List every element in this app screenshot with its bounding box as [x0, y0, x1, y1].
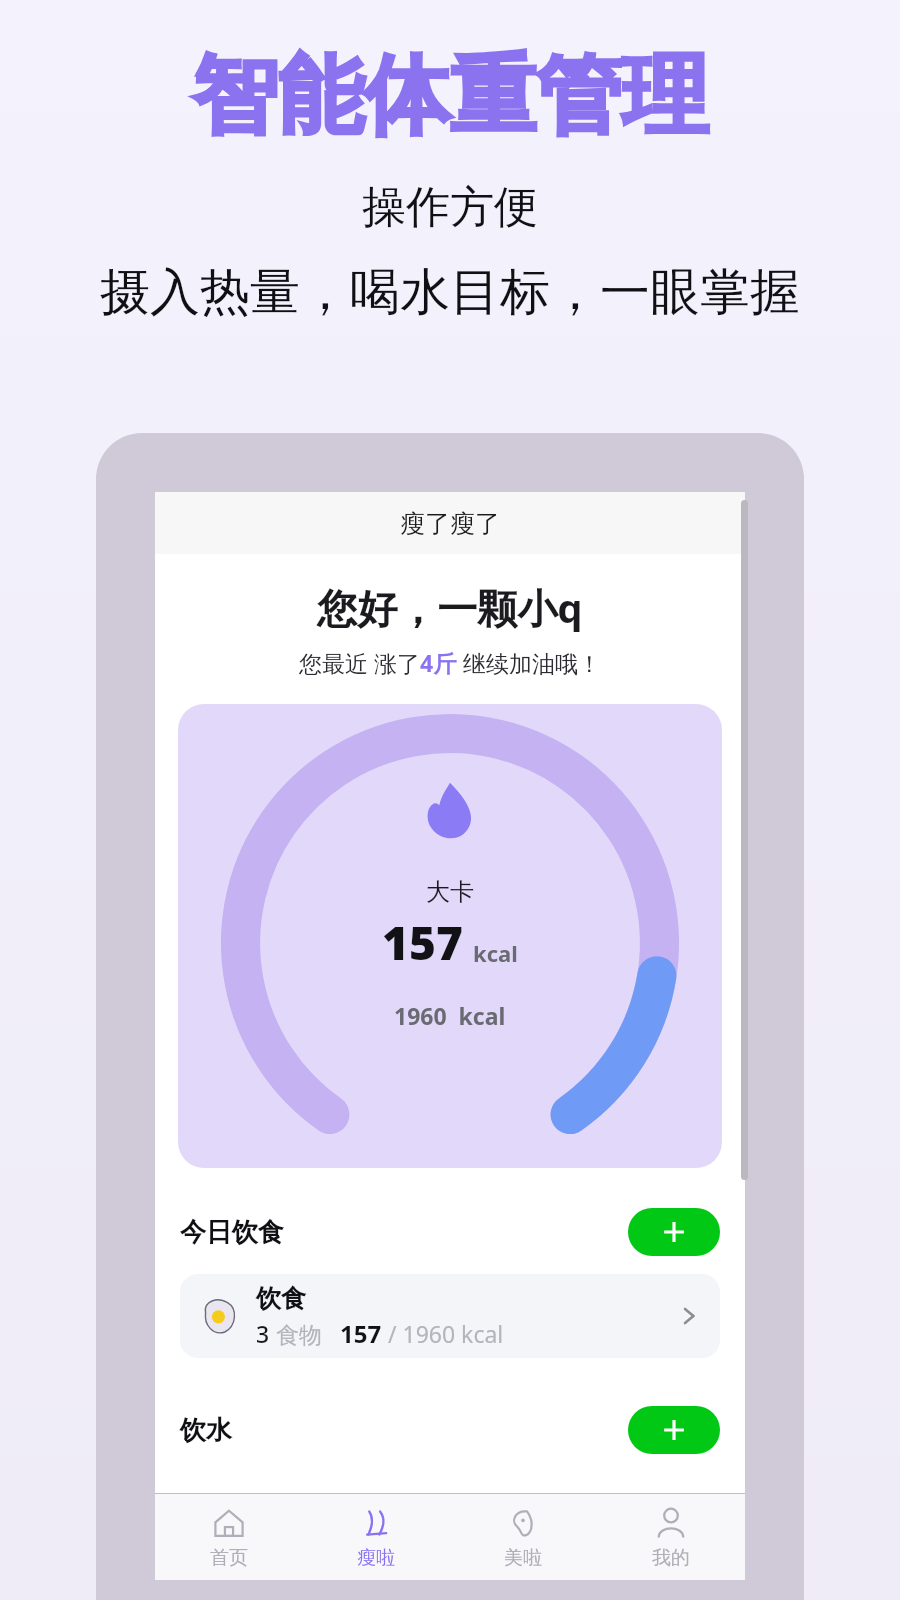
staticText: 继续加油哦！ — [457, 647, 601, 678]
staticText: 3 — [256, 1318, 270, 1349]
staticText: 今日饮食 — [180, 1216, 284, 1249]
staticText: 您好，一颗小q — [155, 580, 745, 635]
staticText: 瘦了瘦了 — [400, 508, 500, 539]
button[interactable]: 美啦 — [449, 1494, 597, 1580]
button[interactable]: 瘦啦 — [302, 1494, 449, 1580]
staticText: 食物 — [270, 1318, 322, 1349]
button[interactable]: 饮食 — [180, 1274, 720, 1358]
staticText: 智能体重管理 — [0, 42, 900, 150]
staticText: 瘦啦 — [357, 1546, 395, 1570]
staticText: / 1960 kcal — [382, 1318, 504, 1349]
staticText: 4斤 — [420, 647, 457, 678]
staticText: 操作方便 — [0, 180, 900, 235]
staticText: 美啦 — [504, 1546, 542, 1570]
button[interactable]: 大卡 — [178, 704, 722, 1168]
staticText: 您最近 涨了 — [299, 647, 420, 678]
button[interactable]: 添加 — [628, 1406, 720, 1454]
staticText: 饮水 — [180, 1414, 232, 1447]
staticText: 我的 — [652, 1546, 690, 1570]
staticText: 摄入热量，喝水目标，一眼掌握 — [0, 261, 900, 324]
staticText: 1960 kcal — [394, 1000, 506, 1031]
staticText: 157 — [340, 1317, 382, 1350]
staticText: 首页 — [210, 1546, 248, 1570]
button[interactable]: 添加 — [628, 1208, 720, 1256]
staticText: 157 — [382, 911, 463, 974]
staticText: 大卡 — [426, 877, 474, 907]
button[interactable]: 我的 — [597, 1494, 745, 1580]
button[interactable]: 首页 — [155, 1494, 302, 1580]
staticText: kcal — [473, 938, 518, 968]
staticText: 饮食 — [256, 1283, 306, 1314]
